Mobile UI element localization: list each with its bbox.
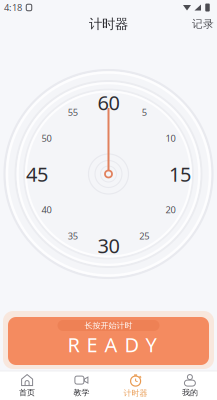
button[interactable]: 计时器 <box>109 371 163 400</box>
staticText: 40 <box>42 204 52 216</box>
staticText: 50 <box>42 132 52 144</box>
staticText: 60 <box>97 89 119 116</box>
button[interactable]: 记录 <box>192 17 214 30</box>
staticText: 20 <box>165 204 175 216</box>
button[interactable]: 教学 <box>54 371 108 400</box>
staticText: 记录 <box>192 17 214 30</box>
staticText: 25 <box>139 230 149 242</box>
staticText: 首页 <box>19 388 35 397</box>
staticText: 15 <box>169 161 191 187</box>
staticText: 10 <box>165 132 175 144</box>
staticText: 5 <box>142 106 147 118</box>
staticText: 55 <box>68 106 78 118</box>
staticText: READY <box>67 331 156 358</box>
button[interactable]: 我的 <box>163 371 217 400</box>
staticText: 4:18 <box>4 1 22 14</box>
staticText: 计时器 <box>124 388 148 398</box>
staticText: 45 <box>26 161 48 187</box>
staticText: 教学 <box>73 388 89 397</box>
button[interactable]: 首页 <box>0 371 54 400</box>
staticText: 35 <box>68 230 78 242</box>
staticText: 30 <box>97 232 119 259</box>
button[interactable]: 长按开始计时 <box>0 0 217 400</box>
staticText: 我的 <box>182 388 198 397</box>
staticText: 计时器 <box>89 16 128 32</box>
staticText: 长按开始计时 <box>84 321 132 330</box>
